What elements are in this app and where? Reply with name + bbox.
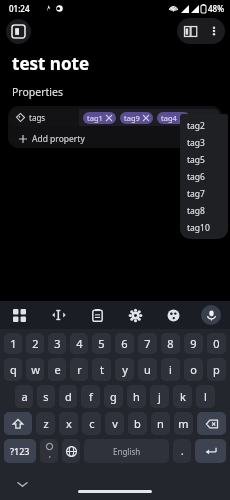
button[interactable]: tag4 (157, 112, 190, 124)
button[interactable]: g (104, 385, 123, 408)
button[interactable]: 9 (184, 333, 203, 354)
staticText: v (112, 416, 118, 431)
button[interactable]: App icon (6, 19, 31, 44)
button[interactable]: Clipboard (78, 301, 116, 329)
staticText: 48% (208, 3, 224, 14)
button[interactable]: c (82, 412, 101, 435)
button[interactable]: Change language (62, 439, 80, 463)
button[interactable]: p (207, 358, 226, 381)
staticText: tag4 (161, 113, 177, 123)
staticText: x (66, 416, 72, 431)
button[interactable]: z (36, 412, 55, 435)
staticText: z (43, 416, 49, 431)
button[interactable]: tag5 (180, 151, 228, 168)
button[interactable]: Theme (154, 301, 192, 329)
button[interactable]: tag10 (180, 219, 228, 236)
button[interactable]: More options (203, 20, 225, 42)
button[interactable]: Settings (116, 301, 154, 329)
button[interactable]: y (115, 358, 134, 381)
button[interactable]: 7 (138, 333, 157, 354)
button[interactable]: 8 (161, 333, 180, 354)
button[interactable]: ?123 (4, 439, 36, 463)
button[interactable]: Emoji and comma (40, 439, 58, 463)
button[interactable]: tag2 (180, 117, 228, 134)
button[interactable]: f (81, 385, 100, 408)
button[interactable]: English (84, 439, 169, 463)
button[interactable]: 2 (26, 333, 44, 354)
button[interactable]: 4 (70, 333, 88, 354)
button[interactable]: u (138, 358, 157, 381)
staticText: tag7 (187, 188, 205, 200)
button[interactable]: Reading mode (177, 18, 203, 44)
button[interactable]: l (196, 385, 215, 408)
staticText: tags (29, 112, 46, 123)
button[interactable]: Hide keyboard (14, 476, 30, 492)
button[interactable]: q (4, 358, 22, 381)
button[interactable]: a (15, 385, 33, 408)
staticText: 0 (213, 336, 220, 351)
staticText: n (157, 416, 164, 431)
staticText: u (144, 362, 151, 377)
button[interactable]: Add property (8, 129, 222, 148)
button[interactable]: tag3 (180, 134, 228, 151)
button[interactable]: j (150, 385, 169, 408)
staticText: e (54, 362, 61, 377)
staticText: b (134, 416, 141, 431)
staticText: 6 (121, 336, 128, 351)
staticText: tag5 (187, 154, 205, 166)
button[interactable]: tag6 (180, 168, 228, 185)
staticText: 1 (10, 336, 17, 351)
staticText: , (49, 450, 51, 460)
staticText: o (190, 362, 197, 377)
button[interactable]: o (184, 358, 203, 381)
button[interactable]: tag1 (83, 112, 116, 124)
staticText: f (89, 389, 93, 404)
button[interactable]: Voice input (201, 305, 221, 325)
staticText: m (178, 416, 189, 431)
button[interactable]: tags (11, 109, 219, 126)
button[interactable]: b (128, 412, 147, 435)
button[interactable]: h (127, 385, 146, 408)
button[interactable]: tag8 (180, 202, 228, 219)
button[interactable]: k (173, 385, 192, 408)
button[interactable]: 3 (48, 333, 66, 354)
staticText: tag9 (124, 113, 140, 123)
button[interactable]: v (105, 412, 124, 435)
staticText: y (122, 362, 128, 377)
staticText: k (180, 389, 186, 404)
button[interactable]: tag9 (120, 112, 153, 124)
button[interactable]: t (92, 358, 111, 381)
button[interactable]: m (174, 412, 193, 435)
button[interactable]: . (173, 439, 191, 463)
button[interactable]: s (37, 385, 55, 408)
button[interactable]: r (70, 358, 88, 381)
button[interactable]: Backspace (197, 412, 226, 435)
staticText: English (113, 446, 141, 457)
staticText: Add property (32, 133, 85, 145)
button[interactable]: e (48, 358, 66, 381)
staticText: . (181, 444, 184, 458)
button[interactable]: Move cursor (39, 301, 78, 329)
staticText: 9 (190, 336, 197, 351)
button[interactable]: 5 (92, 333, 111, 354)
staticText: tag1 (87, 113, 103, 123)
button[interactable]: w (26, 358, 44, 381)
staticText: i (169, 362, 172, 377)
button[interactable]: i (161, 358, 180, 381)
button[interactable]: d (59, 385, 77, 408)
button[interactable]: Enter (195, 439, 226, 463)
button[interactable]: tag7 (180, 185, 228, 202)
button[interactable]: 0 (207, 333, 226, 354)
staticText: r (77, 362, 82, 377)
button[interactable]: Shift (4, 412, 32, 435)
staticText: g (110, 389, 117, 404)
staticText: test note (12, 52, 90, 75)
button[interactable]: 6 (115, 333, 134, 354)
button[interactable]: Clipboard grid (0, 301, 39, 329)
button[interactable]: 1 (4, 333, 22, 354)
staticText: tag6 (187, 171, 205, 183)
staticText: l (204, 389, 207, 404)
button[interactable]: n (151, 412, 170, 435)
staticText: 4 (76, 336, 83, 351)
button[interactable]: x (59, 412, 78, 435)
